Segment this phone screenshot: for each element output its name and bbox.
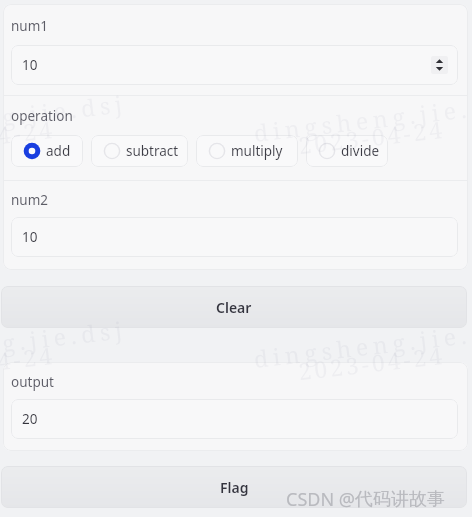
staticText: 2023-04-24 — [0, 113, 57, 160]
staticText: dingsheng.jie.dsj — [0, 313, 129, 374]
staticText: Clear — [216, 298, 252, 317]
staticText: output — [11, 373, 54, 391]
button[interactable]: add — [11, 135, 83, 167]
staticText: dingsheng.jie.dsj — [252, 313, 472, 374]
button[interactable]: 20 — [11, 399, 458, 439]
button[interactable]: 10 — [11, 217, 458, 257]
staticText: add — [46, 142, 71, 160]
button[interactable]: Clear — [1, 286, 467, 328]
button[interactable]: multiply — [196, 135, 298, 167]
button[interactable]: Flag — [1, 466, 467, 508]
staticText: 20 — [22, 410, 38, 428]
staticText: 2023-04-24 — [297, 113, 447, 160]
staticText: dingsheng.jie.dsj — [252, 87, 472, 148]
staticText: subtract — [126, 142, 179, 160]
staticText: 2023-04-24 — [0, 339, 57, 386]
staticText: dingsheng.jie.dsj — [0, 87, 129, 148]
staticText: Flag — [220, 478, 249, 497]
staticText: num2 — [11, 191, 49, 209]
button[interactable]: 10 — [11, 45, 458, 85]
staticText: divide — [341, 142, 380, 160]
button[interactable]: Increment or decrement value — [431, 56, 448, 74]
staticText: 2023-04-24 — [297, 339, 447, 386]
staticText: CSDN @ — [286, 487, 355, 512]
button[interactable]: subtract — [91, 135, 188, 167]
staticText: 10 — [22, 228, 38, 246]
staticText: num1 — [11, 17, 49, 35]
button[interactable]: divide — [306, 135, 388, 167]
staticText: 10 — [22, 56, 38, 74]
staticText: operation — [11, 107, 73, 125]
staticText: multiply — [231, 142, 283, 160]
staticText: 代码讲故事 — [355, 488, 445, 511]
